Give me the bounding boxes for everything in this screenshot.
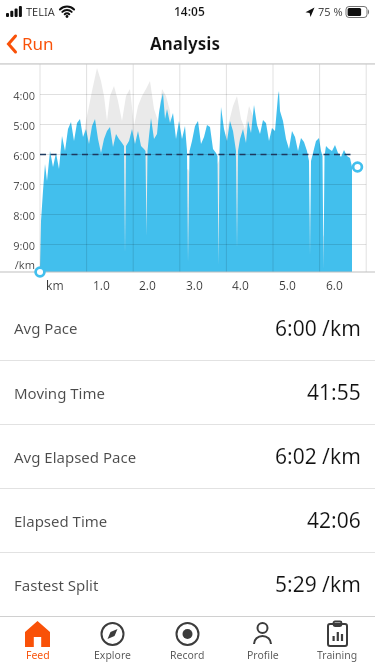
staticText: 5:29 /km [275, 570, 361, 599]
staticText: Record [170, 648, 205, 662]
staticText: 8:00 [0, 208, 35, 223]
staticText: 5.0 [279, 277, 296, 293]
staticText: Explore [94, 648, 131, 662]
button[interactable]: Avg Pace [0, 296, 375, 360]
staticText: 2.0 [139, 277, 156, 293]
staticText: 41:55 [307, 378, 361, 407]
staticText: 1.0 [93, 277, 110, 293]
staticText: Profile [247, 648, 279, 662]
staticText: TELIA [26, 4, 55, 19]
staticText: 6:02 /km [275, 442, 361, 471]
staticText: Elapsed Time [14, 511, 108, 531]
staticText: Analysis [150, 32, 220, 55]
staticText: km [46, 277, 64, 293]
staticText: Training [317, 648, 358, 662]
staticText: 5:00 [0, 118, 35, 133]
staticText: 9:00 [0, 238, 35, 253]
button[interactable]: Record [150, 617, 225, 667]
staticText: 4.0 [232, 277, 249, 293]
staticText: Feed [26, 648, 50, 662]
button[interactable]: Avg Elapsed Pace [0, 425, 375, 488]
button[interactable]: Feed [0, 617, 75, 667]
staticText: 6:00 /km [275, 314, 361, 343]
staticText: /km [0, 257, 35, 272]
staticText: 6.0 [326, 277, 343, 293]
staticText: Fastest Split [14, 575, 99, 595]
button[interactable]: Elapsed Time [0, 489, 375, 552]
staticText: 14:05 [174, 3, 205, 19]
staticText: Run [22, 32, 54, 55]
button[interactable]: Run [6, 32, 54, 55]
button[interactable]: Profile [225, 617, 300, 667]
staticText: Moving Time [14, 383, 105, 403]
button[interactable]: Training [300, 617, 375, 667]
staticText: Avg Pace [14, 318, 78, 338]
staticText: Avg Elapsed Pace [14, 447, 137, 467]
button[interactable]: Moving Time [0, 361, 375, 424]
staticText: 6:00 [0, 148, 35, 163]
staticText: 75 % [318, 4, 343, 19]
button[interactable]: Fastest Split [0, 553, 375, 616]
staticText: 42:06 [307, 506, 361, 535]
staticText: 7:00 [0, 178, 35, 193]
staticText: 4:00 [0, 88, 35, 103]
staticText: 3.0 [186, 277, 203, 293]
button[interactable]: Explore [75, 617, 150, 667]
